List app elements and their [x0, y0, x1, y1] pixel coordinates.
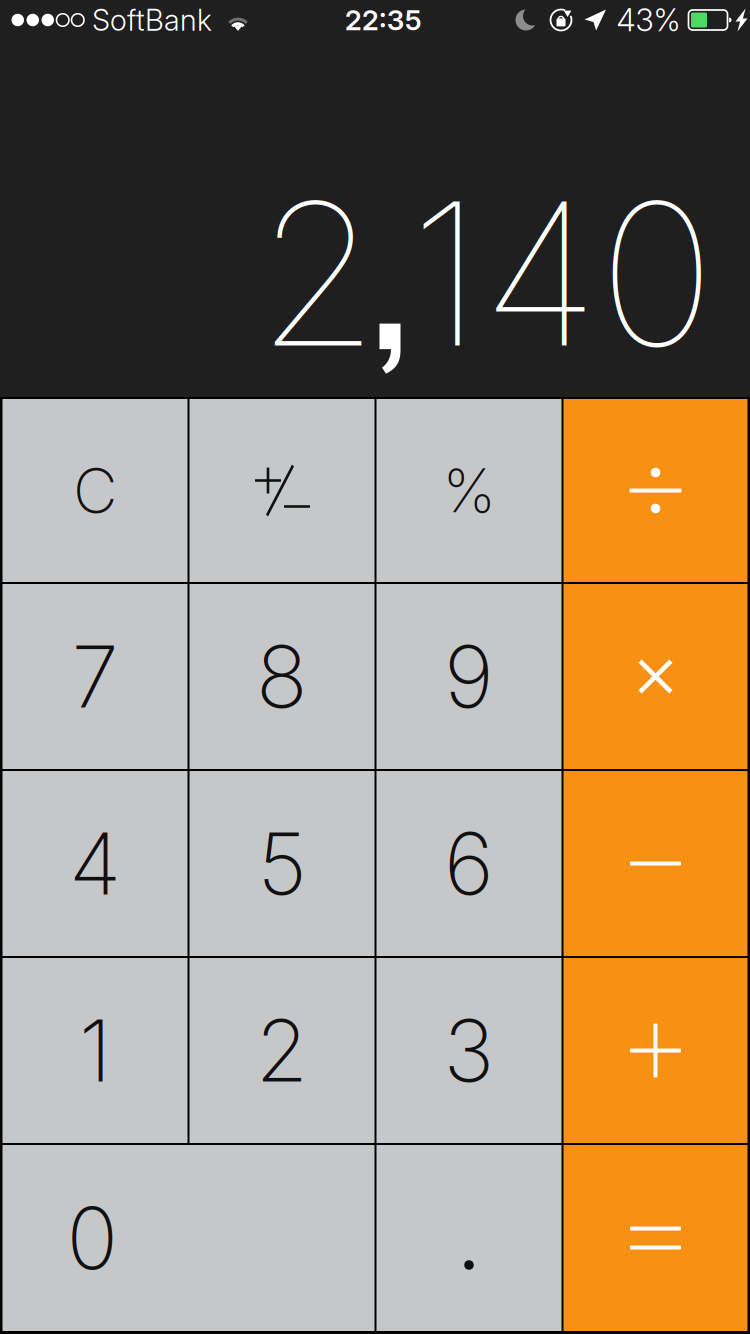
button[interactable]: 1	[2, 958, 187, 1143]
button[interactable]: 3	[376, 958, 561, 1143]
button[interactable]: Add	[563, 958, 747, 1143]
button[interactable]: Plus minus	[189, 399, 374, 582]
staticText: 2	[255, 999, 308, 1102]
button[interactable]: 2	[189, 958, 374, 1143]
button[interactable]: 9	[376, 584, 561, 769]
button[interactable]: Subtract	[563, 771, 747, 956]
staticText: 7	[71, 625, 118, 728]
staticText: 9	[444, 625, 494, 728]
button[interactable]: Percent	[376, 399, 561, 582]
button[interactable]: Clear	[2, 399, 187, 582]
button[interactable]: 6	[376, 771, 561, 956]
staticText: 22:35	[345, 3, 422, 37]
button[interactable]: Multiply	[563, 584, 747, 769]
button[interactable]: Divide	[563, 399, 747, 582]
staticText: 140	[409, 154, 715, 393]
staticText: 0	[66, 1186, 118, 1290]
staticText: 2	[256, 154, 379, 393]
button[interactable]: Decimal point	[376, 1145, 561, 1331]
button[interactable]: Equals	[563, 1145, 747, 1331]
staticText: 8	[256, 625, 308, 728]
button[interactable]: 5	[189, 771, 374, 956]
staticText: 5	[257, 812, 306, 915]
staticText: C	[73, 453, 117, 528]
button[interactable]: 7	[2, 584, 187, 769]
button[interactable]: Zero	[2, 1145, 374, 1331]
staticText: 6	[444, 812, 494, 915]
staticText: 4	[69, 812, 121, 915]
staticText: 3	[443, 999, 494, 1102]
staticText: %	[442, 454, 495, 527]
staticText: SoftBank	[92, 2, 212, 38]
button[interactable]: 8	[189, 584, 374, 769]
staticText: 43%	[616, 1, 680, 38]
staticText: 1	[79, 999, 111, 1102]
button[interactable]: 4	[2, 771, 187, 956]
